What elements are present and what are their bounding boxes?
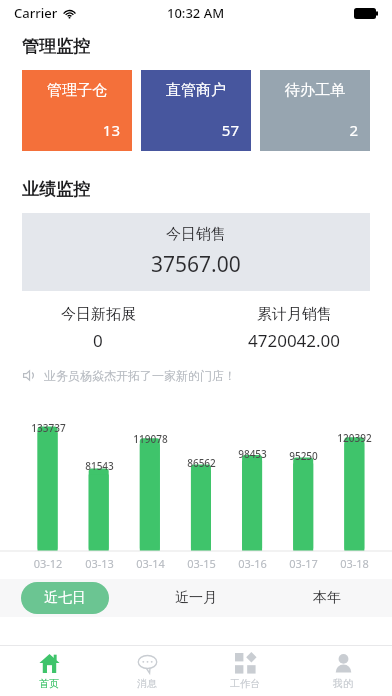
- staticText: 近七日: [44, 589, 86, 607]
- staticText: 今日销售: [166, 225, 226, 244]
- staticText: 业务员杨焱杰开拓了一家新的门店！: [44, 368, 236, 383]
- button[interactable]: 近一月: [130, 579, 261, 617]
- staticText: 13: [34, 120, 120, 140]
- button[interactable]: Workbench: [196, 646, 294, 696]
- staticText: 03-17: [278, 556, 329, 571]
- staticText: Carrier: [14, 4, 58, 22]
- staticText: 我的: [333, 677, 353, 690]
- staticText: 120392: [337, 431, 372, 445]
- staticText: 0: [93, 329, 103, 352]
- staticText: 57: [153, 120, 239, 140]
- button[interactable]: Messages: [98, 646, 196, 696]
- staticText: 累计月销售: [257, 305, 332, 324]
- other: Profile: [333, 653, 354, 674]
- staticText: 81543: [85, 459, 114, 473]
- button[interactable]: 管理子仓: [22, 70, 132, 151]
- button[interactable]: 本年: [261, 579, 392, 617]
- staticText: 待办工单: [285, 81, 345, 100]
- staticText: 03-13: [74, 556, 125, 571]
- staticText: 工作台: [230, 677, 260, 690]
- button[interactable]: Home: [0, 646, 98, 696]
- staticText: 管理监控: [22, 36, 90, 57]
- staticText: 本年: [313, 589, 341, 607]
- staticText: 98453: [238, 447, 267, 461]
- staticText: 03-15: [176, 556, 227, 571]
- other: Workbench: [235, 653, 256, 674]
- button[interactable]: 近七日: [21, 582, 109, 614]
- staticText: 119078: [133, 432, 168, 446]
- staticText: 03-18: [329, 556, 380, 571]
- staticText: 2: [272, 120, 358, 140]
- other: Messages: [137, 653, 158, 674]
- staticText: 直管商户: [166, 81, 226, 100]
- staticText: 03-16: [227, 556, 278, 571]
- other: Home: [39, 653, 60, 674]
- staticText: 133737: [31, 421, 66, 435]
- staticText: 37567.00: [151, 250, 241, 279]
- button[interactable]: 待办工单: [260, 70, 370, 151]
- staticText: 今日新拓展: [61, 305, 136, 324]
- staticText: 业绩监控: [22, 179, 90, 200]
- staticText: 首页: [39, 677, 59, 690]
- staticText: 管理子仓: [47, 81, 107, 100]
- button[interactable]: Profile: [294, 646, 392, 696]
- staticText: 近一月: [175, 589, 217, 607]
- staticText: 03-12: [22, 556, 74, 571]
- staticText: 95250: [289, 449, 318, 463]
- button[interactable]: 直管商户: [141, 70, 251, 151]
- staticText: 4720042.00: [248, 329, 341, 352]
- staticText: 03-14: [125, 556, 176, 571]
- staticText: 消息: [137, 677, 157, 690]
- staticText: 10:32 AM: [167, 4, 225, 22]
- staticText: 86562: [187, 456, 216, 470]
